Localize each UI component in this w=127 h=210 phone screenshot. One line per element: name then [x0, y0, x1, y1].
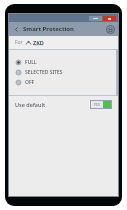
button[interactable]: SELECTED SITES	[9, 67, 118, 77]
button[interactable]: ZKD	[33, 39, 44, 46]
staticText: ZKD	[33, 39, 44, 46]
staticText: OFF	[25, 79, 35, 86]
button[interactable]: Minimize	[89, 16, 102, 21]
button[interactable]: Close	[103, 16, 116, 21]
staticText: Smart Protection	[23, 25, 74, 33]
staticText: SELECTED SITES	[25, 69, 63, 76]
staticText: FULL	[25, 59, 37, 66]
button[interactable]: Use default	[9, 96, 118, 112]
staticText: Use default	[15, 101, 46, 108]
staticText: YES	[94, 102, 100, 107]
button[interactable]: OFF	[9, 77, 118, 87]
staticText: For	[15, 39, 23, 46]
button[interactable]: Home	[105, 24, 115, 34]
button[interactable]: Back	[12, 25, 21, 34]
button[interactable]: FULL	[9, 57, 118, 67]
